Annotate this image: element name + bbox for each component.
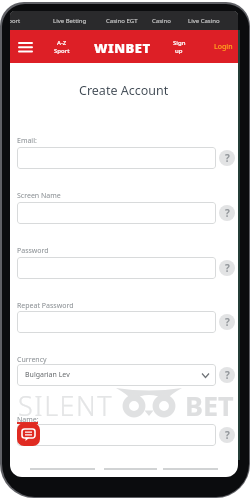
staticText: ? bbox=[225, 368, 230, 382]
staticText: Sign bbox=[173, 39, 186, 47]
staticText: Login bbox=[214, 42, 233, 52]
button[interactable]: Casino EGT bbox=[106, 17, 138, 25]
button[interactable] bbox=[17, 423, 40, 446]
button[interactable] bbox=[15, 37, 35, 57]
button[interactable]: Casino bbox=[152, 17, 171, 25]
button[interactable] bbox=[17, 311, 216, 333]
button[interactable]: Sport bbox=[10, 17, 21, 25]
staticText: Name: bbox=[17, 415, 39, 425]
staticText: ? bbox=[225, 206, 230, 220]
staticText: Screen Name bbox=[17, 191, 61, 201]
button[interactable]: ? bbox=[219, 314, 235, 330]
button[interactable] bbox=[17, 257, 216, 279]
staticText: Repeat Password bbox=[17, 301, 74, 311]
staticText: Password bbox=[17, 246, 49, 256]
staticText: ? bbox=[225, 428, 230, 442]
button[interactable]: Live Betting bbox=[53, 17, 87, 25]
button[interactable]: A-Z bbox=[41, 34, 83, 59]
button[interactable] bbox=[17, 147, 216, 169]
button[interactable] bbox=[17, 202, 216, 224]
staticText: Email: bbox=[17, 136, 37, 146]
button[interactable]: ? bbox=[219, 427, 235, 443]
button[interactable]: ? bbox=[219, 150, 235, 166]
button[interactable]: ? bbox=[219, 205, 235, 221]
staticText: ? bbox=[225, 151, 230, 165]
staticText: BET bbox=[185, 387, 234, 416]
button[interactable]: ? bbox=[219, 260, 235, 276]
button[interactable]: Sign bbox=[158, 34, 200, 59]
staticText: ? bbox=[225, 315, 230, 329]
staticText: ? bbox=[225, 261, 230, 275]
staticText: A-Z bbox=[57, 39, 67, 47]
staticText: WINBET bbox=[94, 39, 151, 57]
staticText: Bulgarian Lev bbox=[25, 370, 70, 380]
staticText: up bbox=[175, 47, 183, 55]
button[interactable] bbox=[17, 424, 216, 446]
staticText: Currency bbox=[17, 355, 47, 365]
staticText: SILENT bbox=[18, 387, 113, 416]
staticText: Sport bbox=[54, 47, 70, 55]
button[interactable]: Bulgarian Lev bbox=[17, 364, 216, 386]
button[interactable]: Login bbox=[207, 34, 238, 59]
button[interactable]: ? bbox=[219, 367, 235, 383]
staticText: Create Account bbox=[79, 82, 169, 99]
button[interactable]: Live Casino bbox=[188, 17, 220, 25]
